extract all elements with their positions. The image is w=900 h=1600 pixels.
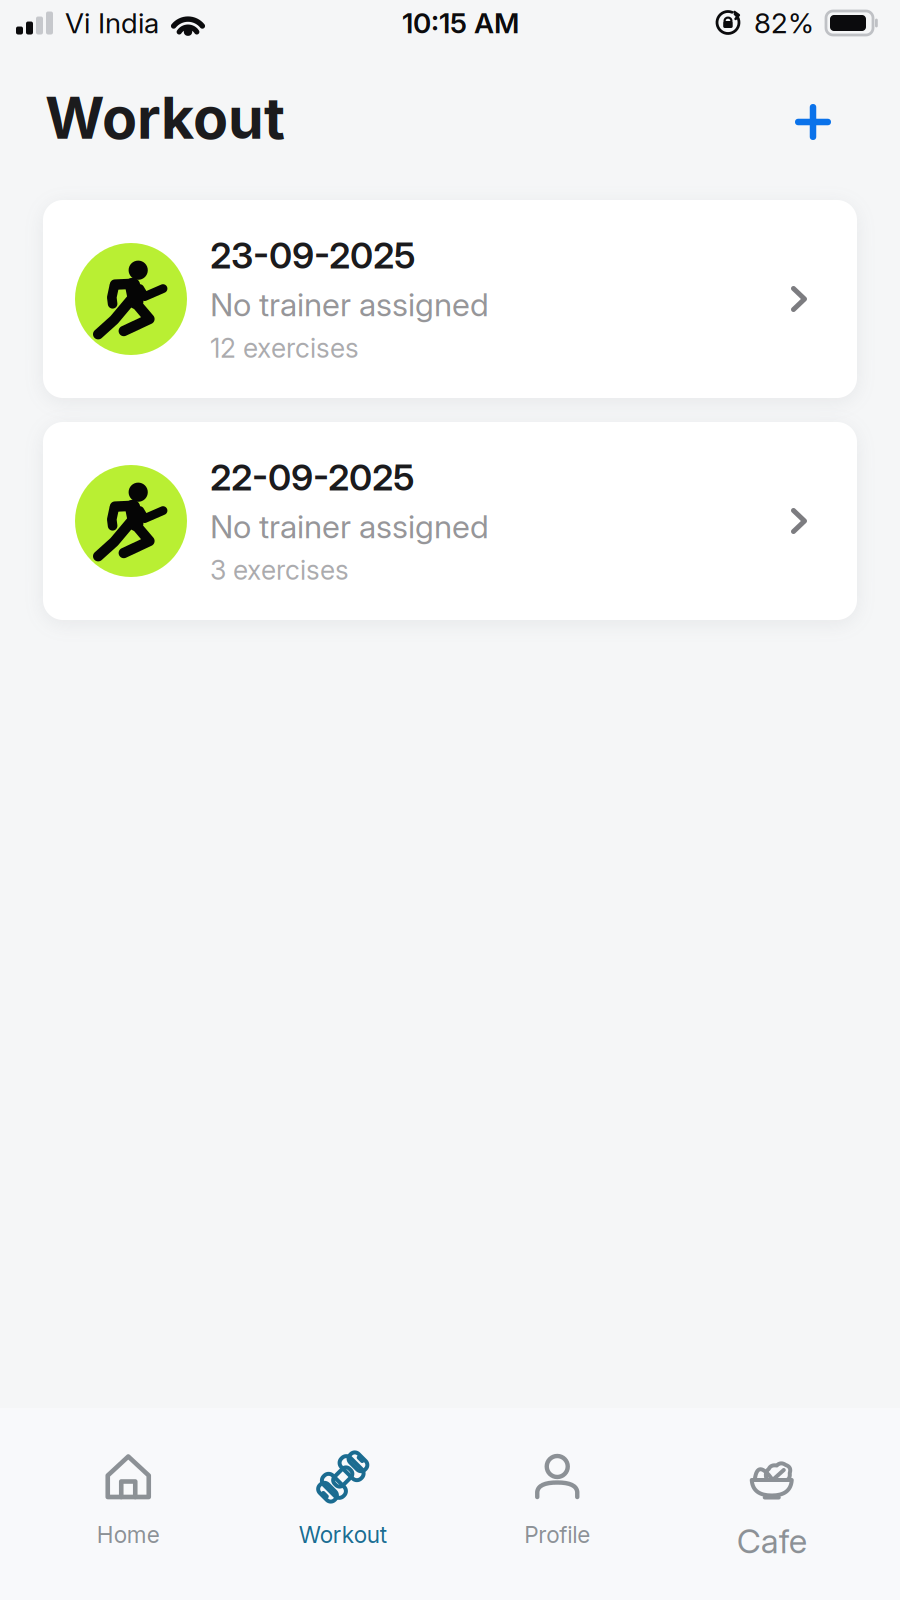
- staticText: 12 exercises: [210, 332, 359, 364]
- staticText: Workout: [45, 83, 285, 153]
- staticText: No trainer assigned: [210, 507, 489, 546]
- staticText: 82%: [754, 6, 814, 40]
- staticText: 22-09-2025: [210, 456, 415, 499]
- staticText: No trainer assigned: [210, 285, 489, 324]
- staticText: 23-09-2025: [210, 234, 416, 277]
- button[interactable]: 23-09-2025: [43, 200, 857, 398]
- staticText: Vi India: [65, 6, 159, 40]
- staticText: Workout: [299, 1521, 387, 1548]
- button[interactable]: Add workout: [787, 92, 839, 144]
- staticText: 10:15 AM: [402, 6, 519, 40]
- staticText: Home: [97, 1521, 160, 1548]
- button[interactable]: Profile: [450, 1408, 664, 1600]
- button[interactable]: 22-09-2025: [43, 422, 857, 620]
- button[interactable]: Workout: [235, 1408, 450, 1600]
- button[interactable]: Cafe: [664, 1408, 879, 1600]
- staticText: Profile: [524, 1521, 590, 1548]
- button[interactable]: Home: [21, 1408, 235, 1600]
- staticText: 3 exercises: [210, 554, 349, 586]
- staticText: Cafe: [737, 1521, 807, 1561]
